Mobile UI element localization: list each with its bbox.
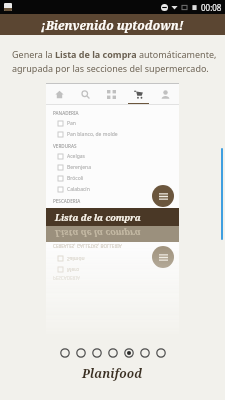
staticText: Planifood — [82, 365, 143, 381]
button[interactable]: Categories — [98, 84, 125, 104]
staticText: Acelgas — [67, 153, 85, 160]
staticText: CEREALES, GALLETAS, BOLLERIA — [53, 231, 123, 237]
staticText: Pan blanco, de molde — [67, 131, 118, 138]
button[interactable]: Pan — [53, 118, 179, 129]
staticText: VERDURAS — [53, 143, 77, 149]
staticText: Genera la Lista de la compra automáticam… — [12, 48, 217, 75]
button[interactable]: Profile — [152, 84, 179, 104]
staticText: Lista de la compra — [55, 228, 141, 240]
staticText: Pan — [67, 120, 76, 127]
staticText: CEREALES, GALLETAS, BOLLERIA — [53, 243, 122, 249]
staticText: Lista de la compra — [55, 211, 141, 223]
button[interactable]: Page 2 — [76, 348, 86, 358]
button[interactable]: Calabacín — [53, 184, 179, 195]
button[interactable]: Page 4 — [108, 348, 118, 358]
button[interactable]: Page 5 — [124, 348, 134, 358]
staticText: Mero — [67, 266, 80, 273]
staticText: PESCADERIA — [53, 198, 81, 204]
button[interactable]: Page 7 — [156, 348, 166, 358]
button[interactable]: Salmón — [53, 217, 179, 228]
button[interactable]: Brócoli — [53, 173, 179, 184]
staticText: PESCADERIA — [53, 275, 80, 281]
button[interactable]: Menu — [152, 185, 174, 207]
button[interactable]: Berenjena — [53, 162, 179, 173]
staticText: Berenjena — [67, 164, 91, 171]
staticText: Calabacín — [67, 186, 90, 193]
button[interactable]: Lista de la compra — [46, 208, 179, 226]
staticText: Mero — [67, 208, 80, 215]
staticText: 00:08 — [201, 2, 222, 13]
staticText: ¡Bienvenido uptodown! — [41, 17, 184, 33]
button[interactable]: Search — [72, 84, 98, 104]
button[interactable]: Shopping list — [125, 84, 152, 104]
button[interactable]: Acelgas — [53, 151, 179, 162]
staticText: Salmón — [67, 219, 85, 226]
staticText: Brócoli — [67, 175, 84, 182]
staticText: PANADERIA — [53, 110, 79, 116]
button[interactable]: Home — [46, 84, 72, 104]
button[interactable]: Page 6 — [140, 348, 150, 358]
button[interactable]: Mero — [53, 206, 179, 217]
button[interactable]: Page 3 — [92, 348, 102, 358]
staticText: Salmón — [67, 255, 85, 262]
button[interactable]: Page 1 — [60, 348, 70, 358]
button[interactable]: Pan blanco, de molde — [53, 129, 179, 140]
